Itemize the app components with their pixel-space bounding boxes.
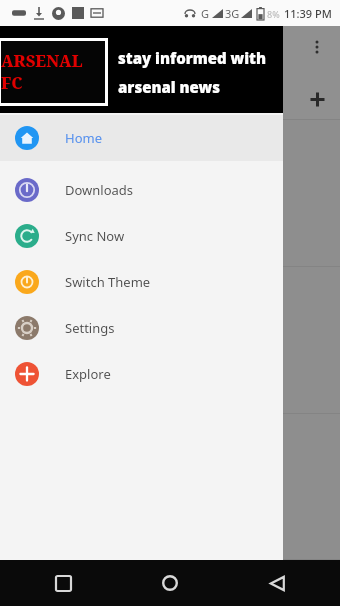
button[interactable]: Recent apps (44, 564, 82, 602)
button[interactable]: Sync Now (0, 213, 283, 259)
staticText: 8% (267, 8, 280, 20)
staticText: 11:39 PM (284, 6, 332, 21)
staticText: Explore (65, 365, 111, 383)
staticText: 3G (225, 6, 240, 21)
staticText: Home (65, 129, 102, 147)
staticText: G (201, 6, 210, 21)
staticText: Downloads (65, 181, 134, 199)
button[interactable]: ARSENAL (0, 414, 340, 560)
button[interactable]: Settings (0, 305, 283, 351)
button[interactable]: Switch Theme (0, 259, 283, 305)
button[interactable]: Downloads (0, 167, 283, 213)
staticText: Switch Theme (65, 273, 151, 291)
staticText: arsenal news (118, 77, 220, 97)
button[interactable]: Home (0, 115, 283, 161)
button[interactable]: Back (258, 564, 296, 602)
button[interactable]: GOONER (0, 267, 340, 414)
staticText: TALK (14, 297, 51, 317)
button[interactable]: Add (302, 84, 332, 114)
staticText: Sync Now (65, 227, 125, 245)
staticText: GOONER (14, 277, 80, 297)
staticText: ARSENAL (14, 130, 82, 150)
staticText: ARSENALIST.COM (14, 243, 114, 259)
button[interactable]: More options (302, 32, 332, 62)
staticText: ARSENAL FC (1, 50, 105, 94)
button[interactable]: Home (151, 564, 189, 602)
button[interactable]: ARSENAL (0, 120, 340, 267)
staticText: stay informed with latest (118, 48, 283, 68)
staticText: BLOG (14, 150, 55, 170)
button[interactable]: Explore (0, 351, 283, 397)
staticText: Settings (65, 319, 115, 337)
